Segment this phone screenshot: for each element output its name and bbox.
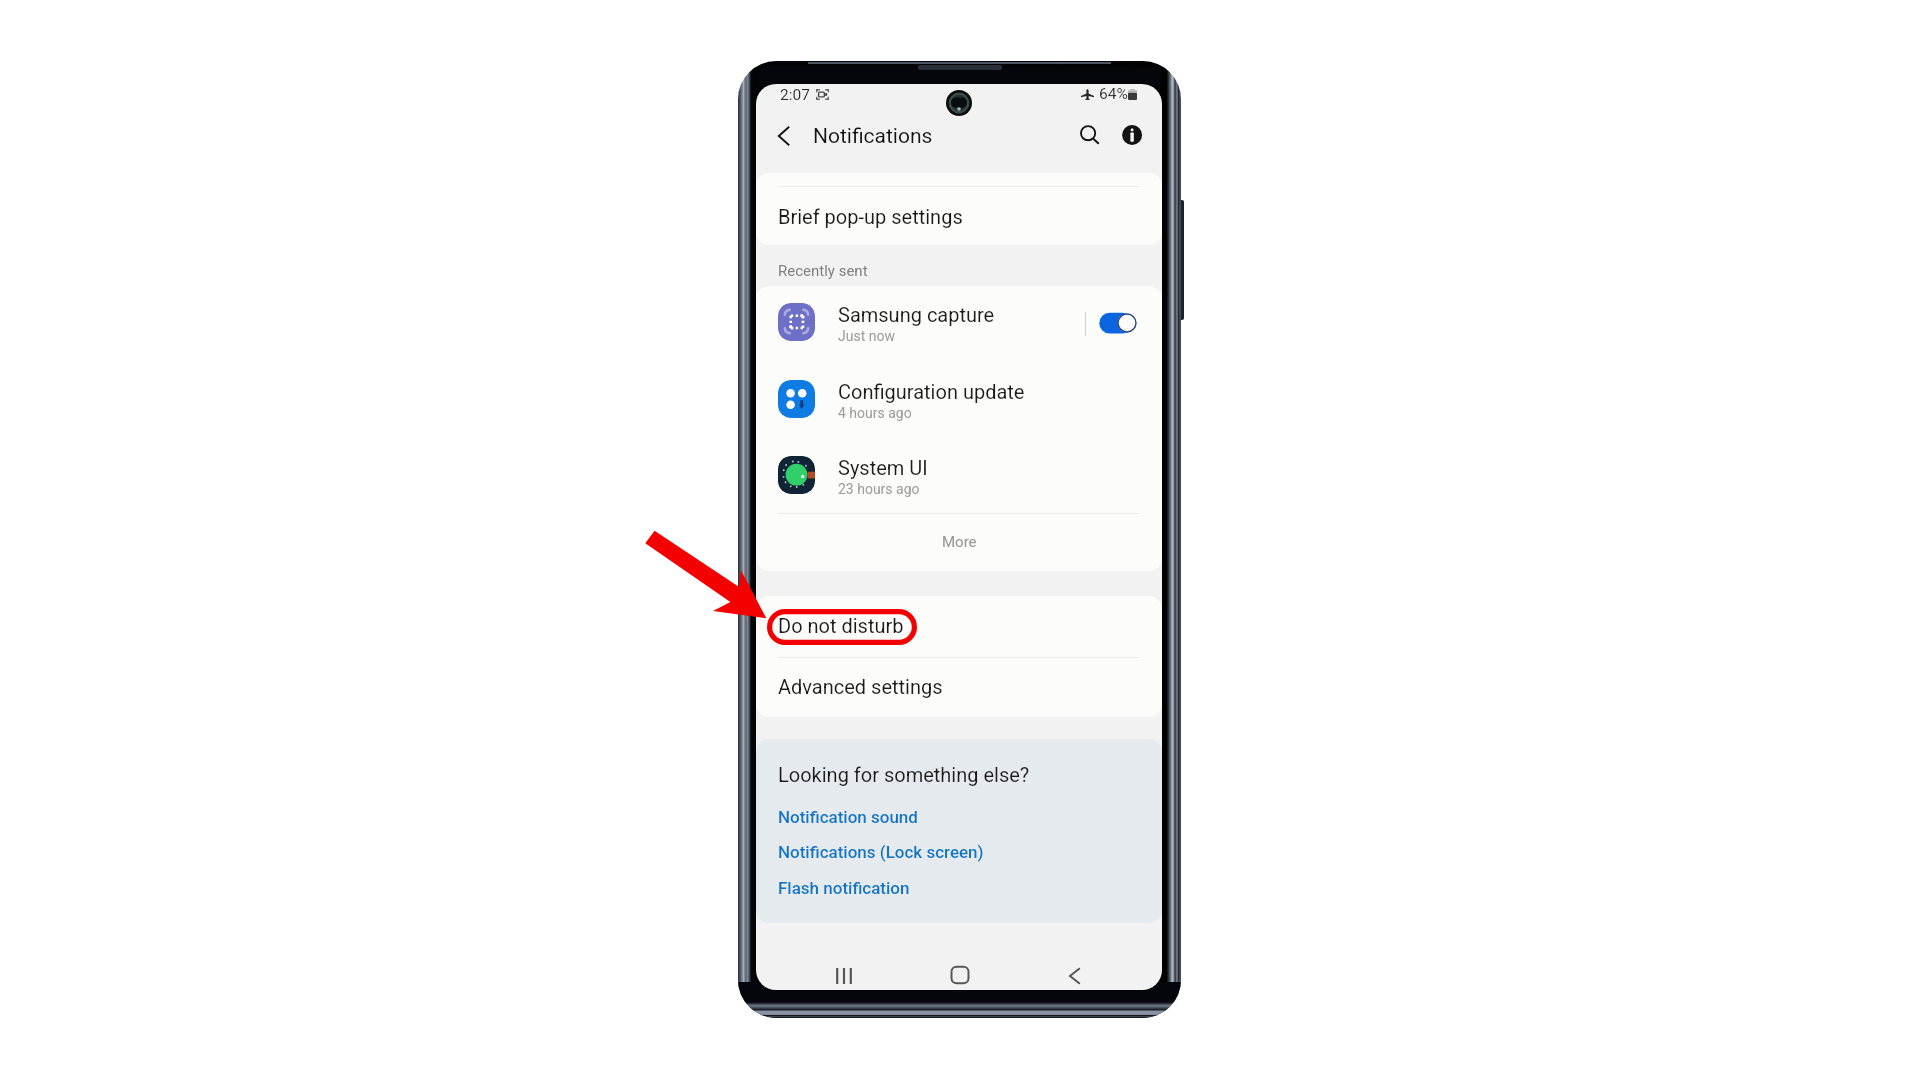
button[interactable]: Notifications (Lock screen) bbox=[778, 842, 984, 862]
staticText: Notifications (Lock screen) bbox=[778, 842, 984, 862]
staticText: Brief pop-up settings bbox=[778, 205, 963, 228]
staticText: System UI bbox=[838, 456, 928, 479]
button[interactable]: System UI bbox=[756, 440, 1162, 516]
staticText: Just now bbox=[838, 328, 895, 344]
button[interactable]: Samsung capture bbox=[756, 286, 1162, 364]
staticText: Notification sound bbox=[778, 807, 918, 827]
staticText: Configuration update bbox=[838, 380, 1025, 403]
staticText: Do not disturb bbox=[778, 614, 904, 637]
staticText: Notifications bbox=[813, 124, 933, 149]
button[interactable]: Information bbox=[1114, 117, 1150, 153]
button[interactable]: Recent apps bbox=[824, 956, 864, 990]
button[interactable]: Search bbox=[1070, 115, 1108, 153]
staticText: Flash notification bbox=[778, 878, 910, 898]
button[interactable]: Notification sound bbox=[778, 807, 918, 827]
button[interactable]: Do not disturb bbox=[756, 596, 1162, 657]
button[interactable]: Advanced settings bbox=[756, 657, 1162, 717]
button[interactable]: Configuration update bbox=[756, 364, 1162, 440]
button[interactable]: Turn off Samsung capture notifications bbox=[1095, 308, 1141, 338]
button[interactable]: Flash notification bbox=[778, 878, 910, 898]
staticText: 4 hours ago bbox=[838, 405, 912, 421]
button[interactable]: Brief pop-up settings bbox=[756, 187, 1162, 244]
button[interactable]: Back bbox=[764, 116, 804, 156]
staticText: 23 hours ago bbox=[838, 481, 920, 497]
staticText: Advanced settings bbox=[778, 675, 943, 698]
staticText: Recently sent bbox=[778, 262, 868, 280]
staticText: 2:07 bbox=[780, 86, 810, 104]
button[interactable]: Home bbox=[940, 955, 980, 990]
staticText: More bbox=[942, 533, 977, 551]
staticText: Looking for something else? bbox=[778, 763, 1030, 786]
button[interactable]: More bbox=[756, 513, 1162, 571]
button[interactable]: Back bbox=[1050, 956, 1090, 990]
staticText: 64% bbox=[1099, 85, 1128, 103]
staticText: Samsung capture bbox=[838, 303, 995, 326]
